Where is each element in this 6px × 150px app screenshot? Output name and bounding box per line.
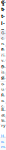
- staticText: General: [1, 30, 5, 62]
- button[interactable]: Display: [0, 68, 6, 82]
- staticText: 9:41: [2, 0, 5, 12]
- staticText: Display: [1, 64, 5, 85]
- staticText: Settings: [1, 0, 6, 48]
- staticText: Privacy: [1, 47, 5, 74]
- staticText: Focus: [1, 93, 5, 114]
- button[interactable]: Home: [0, 138, 6, 150]
- button[interactable]: General: [0, 39, 6, 53]
- staticText: Battery: [1, 107, 5, 128]
- staticText: Sounds: [1, 76, 5, 102]
- button[interactable]: Focus: [0, 96, 6, 110]
- button[interactable]: Battery: [0, 110, 6, 125]
- button[interactable]: Sounds: [0, 82, 6, 96]
- staticText: Home: [1, 133, 6, 150]
- button[interactable]: Privacy: [0, 53, 6, 68]
